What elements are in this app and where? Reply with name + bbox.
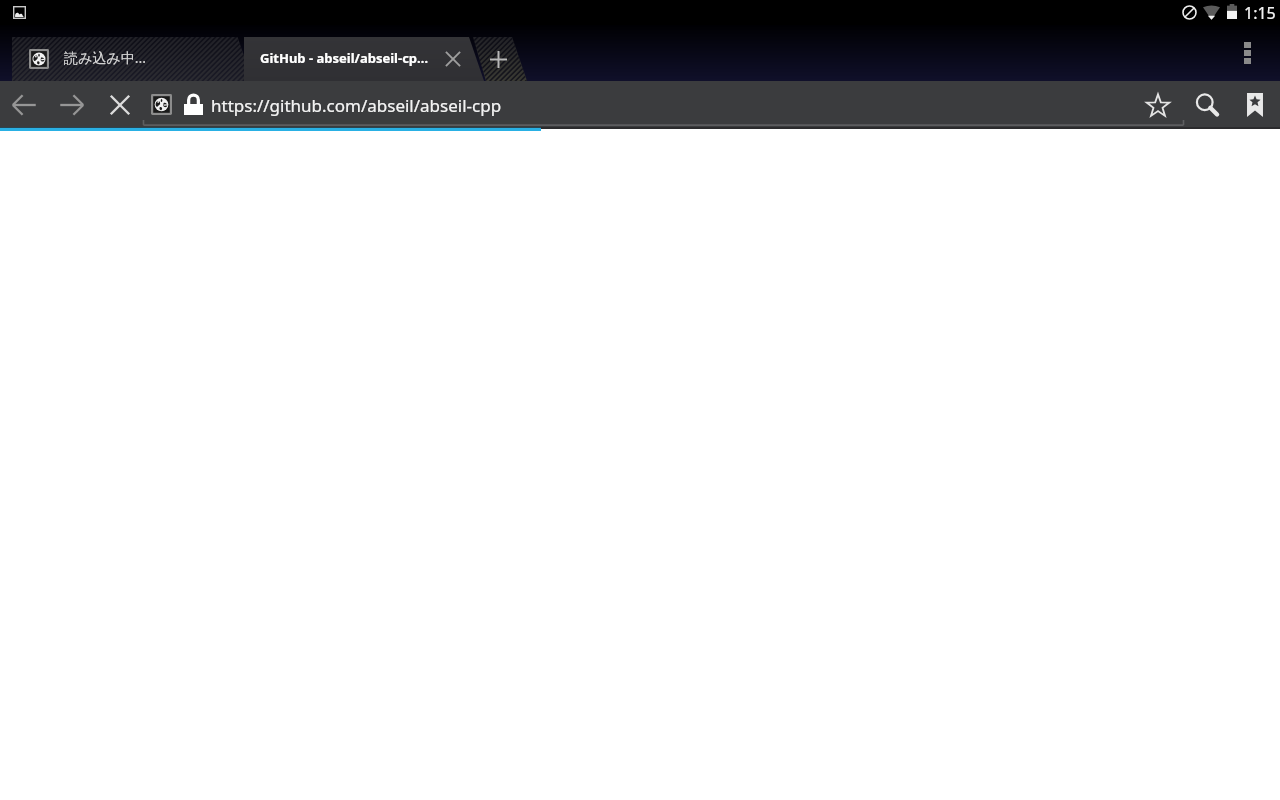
staticText: 1:15: [1244, 2, 1276, 24]
button[interactable]: Close tab: [437, 43, 469, 75]
staticText: GitHub - abseil/abseil-cp…: [260, 49, 429, 67]
button[interactable]: New tab: [482, 43, 514, 75]
staticText: https://github.com/abseil/abseil-cpp: [211, 94, 502, 117]
staticText: 読み込み中...: [64, 48, 146, 67]
button[interactable]: 読み込み中...: [14, 35, 225, 79]
button[interactable]: GitHub - abseil/abseil-cp…: [244, 36, 470, 80]
button[interactable]: Search: [1183, 81, 1231, 129]
button[interactable]: Bookmarks: [1231, 81, 1279, 129]
button[interactable]: More options: [1230, 28, 1265, 78]
button[interactable]: Forward: [48, 81, 96, 129]
button[interactable]: Back: [0, 81, 48, 129]
button[interactable]: Stop loading: [96, 81, 144, 129]
button[interactable]: Bookmark this page: [1134, 81, 1182, 129]
